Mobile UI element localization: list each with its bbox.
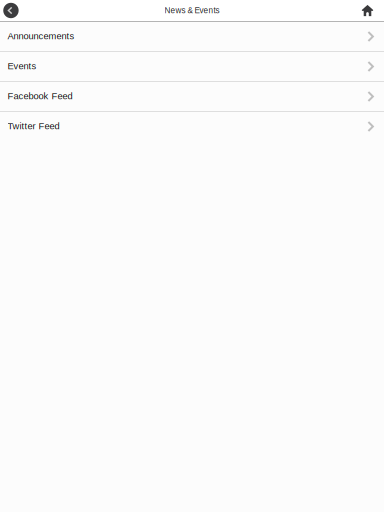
staticText: Twitter Feed (7, 121, 59, 131)
button[interactable]: Home (357, 0, 378, 21)
staticText: News & Events (164, 6, 219, 15)
staticText: Facebook Feed (7, 91, 72, 101)
button[interactable]: Back (1, 0, 21, 21)
staticText: Events (7, 61, 36, 71)
button[interactable]: Events (0, 52, 384, 81)
button[interactable]: Facebook Feed (0, 82, 384, 111)
button[interactable]: Announcements (0, 22, 384, 51)
staticText: Announcements (7, 31, 74, 41)
button[interactable]: Twitter Feed (0, 112, 384, 141)
